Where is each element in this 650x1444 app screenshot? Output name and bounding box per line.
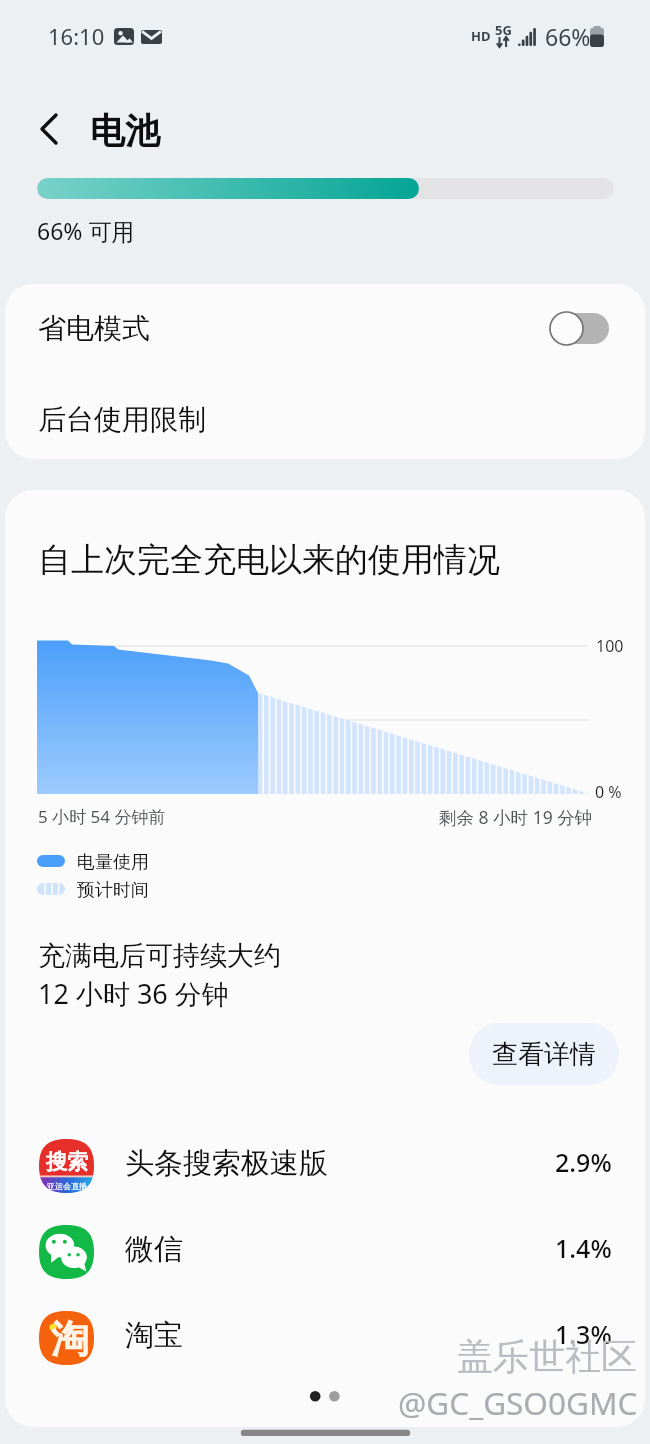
staticText: 100 xyxy=(596,635,624,657)
staticText: @GC_GSO0GMC xyxy=(398,1381,638,1424)
staticText: 1.4% xyxy=(555,1231,612,1265)
staticText: 5G xyxy=(495,21,512,39)
staticText: 66% 可用 xyxy=(37,215,135,246)
staticText: 12 小时 36 分钟 xyxy=(38,975,229,1012)
staticText: 66% xyxy=(545,21,591,52)
staticText: 盖乐世社区 xyxy=(457,1334,637,1379)
staticText: 2.9% xyxy=(555,1145,612,1179)
button[interactable]: 省电模式 xyxy=(5,284,645,372)
staticText: 16:10 xyxy=(48,21,105,51)
staticText: 电池 xyxy=(90,109,160,153)
staticText: HD xyxy=(471,27,491,45)
staticText: 亚运会直播 xyxy=(47,1181,87,1191)
button[interactable]: Back xyxy=(21,101,77,157)
staticText: 后台使用限制 xyxy=(38,402,206,437)
staticText: 微信 xyxy=(125,1231,183,1268)
staticText: 查看详情 xyxy=(492,1038,596,1071)
staticText: 省电模式 xyxy=(38,311,150,346)
button[interactable]: 查看详情 xyxy=(469,1023,619,1085)
button[interactable]: 淘 xyxy=(5,1294,645,1381)
staticText: 淘 xyxy=(51,1315,89,1363)
button[interactable]: 省电模式 switch xyxy=(549,310,609,346)
button[interactable]: 微信 xyxy=(5,1208,645,1295)
staticText: 剩余 8 小时 19 分钟 xyxy=(439,805,593,829)
staticText: 1.3% xyxy=(555,1317,612,1351)
staticText: 头条搜索极速版 xyxy=(125,1145,328,1182)
staticText: 预计时间 xyxy=(77,879,149,902)
staticText: 自上次完全充电以来的使用情况 xyxy=(38,539,500,581)
staticText: 搜索 xyxy=(46,1149,88,1175)
staticText: 淘宝 xyxy=(125,1317,183,1354)
staticText: 充满电后可持续大约 xyxy=(38,939,281,973)
staticText: 0 % xyxy=(595,781,622,803)
button[interactable]: 搜索 xyxy=(5,1122,645,1209)
staticText: 5 小时 54 分钟前 xyxy=(38,805,166,828)
staticText: 电量使用 xyxy=(77,851,149,874)
button[interactable]: 后台使用限制 xyxy=(5,372,645,459)
